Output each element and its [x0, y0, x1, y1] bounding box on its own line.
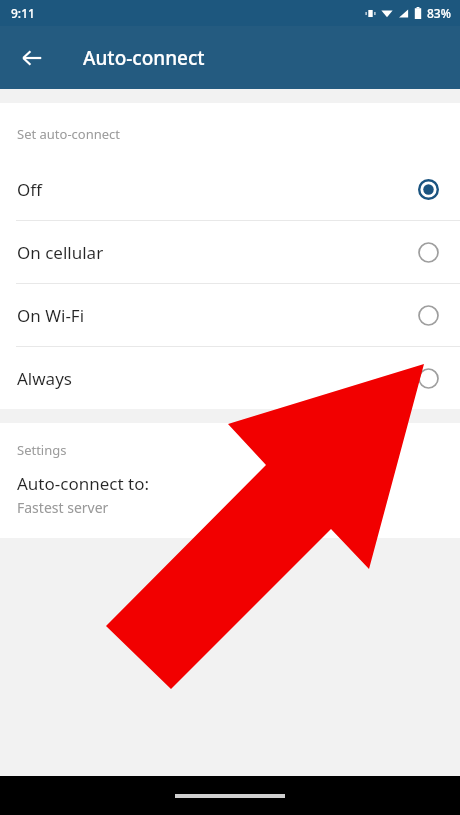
- button[interactable]: On Wi-Fi: [0, 284, 460, 346]
- staticText: Off: [17, 178, 418, 201]
- button[interactable]: Auto-connect to:: [0, 472, 460, 538]
- staticText: Auto-connect: [83, 45, 205, 71]
- staticText: 83%: [427, 5, 451, 21]
- button[interactable]: Always: [0, 347, 460, 409]
- button[interactable]: Back: [8, 34, 56, 82]
- staticText: Settings: [17, 441, 67, 459]
- button[interactable]: Off: [0, 158, 460, 220]
- staticText: 9:11: [11, 5, 35, 21]
- staticText: Auto-connect to:: [17, 472, 150, 495]
- staticText: On cellular: [17, 241, 418, 264]
- button[interactable]: On cellular: [0, 221, 460, 283]
- staticText: Fastest server: [17, 498, 109, 517]
- staticText: Always: [17, 367, 418, 390]
- staticText: Set auto-connect: [17, 125, 121, 143]
- staticText: On Wi-Fi: [17, 304, 418, 327]
